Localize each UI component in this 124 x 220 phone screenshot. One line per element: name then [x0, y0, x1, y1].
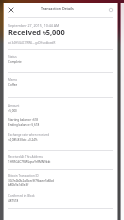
staticText: Bitcoin Transaction ID — [8, 174, 39, 178]
button[interactable]: Help — [104, 3, 117, 16]
staticText: at 34H5G4C7RWL...gcDKvobkwdR — [8, 41, 56, 45]
staticText: Exchange rate when received — [8, 133, 50, 137]
staticText: 3G7e4b0b2a3bec9f7fbaee5d6bd — [8, 179, 54, 183]
staticText: Starting balance ৳618 — [8, 118, 39, 122]
staticText: Ending balance ৳5,618 — [8, 123, 40, 127]
staticText: Confirmed in Block — [8, 194, 35, 198]
staticText: September 27, 2015, 10:44 AM — [8, 23, 60, 28]
staticText: 1HR5G4C7RWLqsoYrRMN9bkt — [8, 160, 51, 164]
staticText: 487518 — [8, 199, 19, 203]
staticText: ৳5,000 — [8, 109, 17, 113]
button[interactable]: Close — [4, 3, 17, 16]
staticText: Transaction Details — [41, 6, 74, 11]
staticText: Status — [8, 55, 17, 59]
staticText: b80b9a1d0e3f — [8, 183, 29, 187]
staticText: Received At This Address — [8, 155, 43, 159]
staticText: Coffee — [8, 83, 18, 87]
staticText: Complete — [8, 60, 22, 64]
staticText: Memo — [8, 78, 18, 82]
staticText: Received ৳5,000 — [8, 27, 65, 37]
staticText: Amount — [8, 104, 20, 108]
staticText: ৳4,085.83/btc +0.24% — [8, 138, 38, 142]
